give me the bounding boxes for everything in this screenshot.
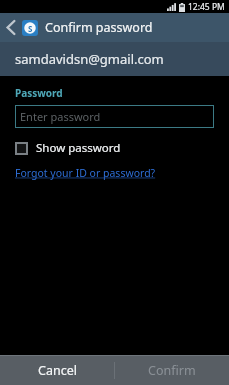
button[interactable]: Enter password xyxy=(15,105,214,128)
staticText: Forgot your ID or password? xyxy=(15,166,156,180)
staticText: 12:45 PM xyxy=(188,1,225,13)
staticText: Password xyxy=(15,86,63,100)
button[interactable]: Confirm xyxy=(115,356,229,385)
button[interactable]: samdavidsn@gmail.com xyxy=(0,42,229,76)
button[interactable]: Show password xyxy=(15,140,121,156)
staticText: Cancel xyxy=(38,362,77,379)
staticText: samdavidsn@gmail.com xyxy=(15,50,164,68)
button[interactable]: Forgot your ID or password? xyxy=(15,166,156,180)
button[interactable]: Back xyxy=(0,13,22,42)
staticText: S xyxy=(28,23,33,34)
button[interactable]: Cancel xyxy=(0,356,114,385)
staticText: Confirm xyxy=(148,362,196,379)
staticText: Enter password xyxy=(20,109,101,124)
staticText: Show password xyxy=(36,140,121,156)
staticText: Confirm password xyxy=(45,19,153,36)
